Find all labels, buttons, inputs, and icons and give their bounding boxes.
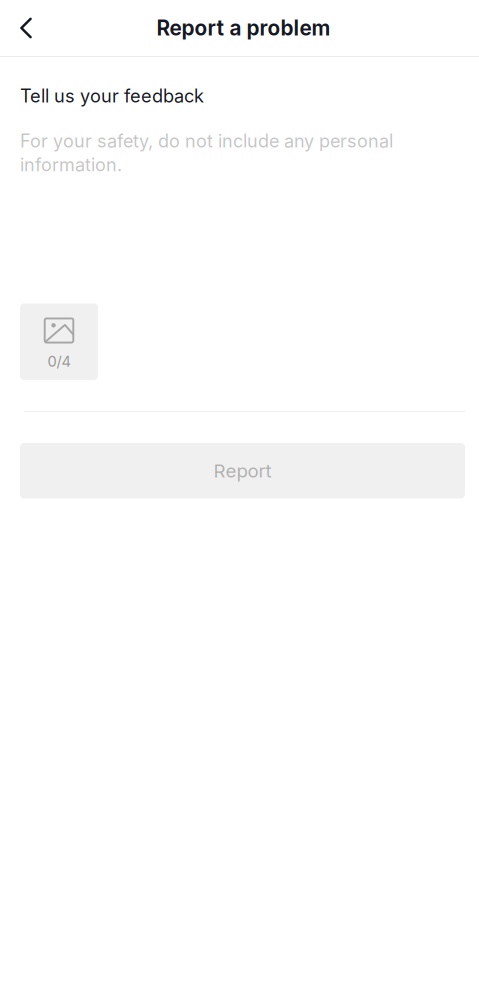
staticText: Report — [213, 459, 271, 482]
button[interactable]: Report — [20, 443, 465, 498]
staticText: 0/4 — [47, 352, 70, 370]
button[interactable]: Add photo, 0 of 4 selected — [20, 303, 98, 380]
staticText: Report a problem — [156, 15, 330, 41]
staticText: Tell us your feedback — [20, 85, 204, 107]
staticText: For your safety, do not include any pers… — [20, 130, 393, 175]
button[interactable]: Back — [5, 6, 47, 50]
